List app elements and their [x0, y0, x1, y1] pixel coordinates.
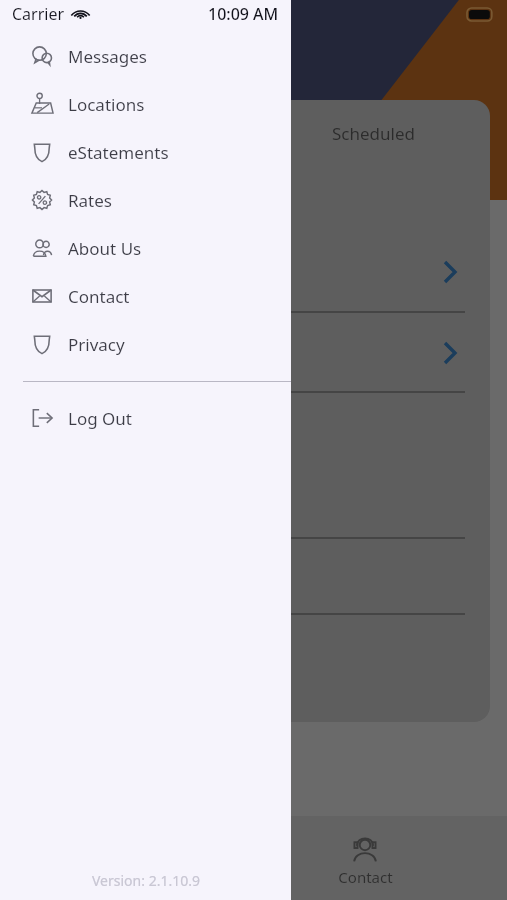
staticText: Contact	[338, 867, 393, 887]
button[interactable]: About Us	[0, 224, 291, 272]
staticText: Rates	[68, 189, 112, 212]
staticText: Contact	[68, 285, 130, 308]
staticText: eStatements	[68, 141, 169, 164]
button[interactable]: Contact	[0, 272, 291, 320]
button[interactable]: Messages	[0, 32, 291, 80]
staticText: Carrier	[12, 3, 65, 25]
staticText: Scheduled	[332, 122, 415, 145]
staticText: About Us	[68, 237, 142, 260]
staticText: Log Out	[68, 407, 132, 430]
button[interactable]: Privacy	[0, 320, 291, 368]
button[interactable]: Rates	[0, 176, 291, 224]
button[interactable]: Log Out	[0, 394, 291, 442]
button[interactable]: Locations	[0, 80, 291, 128]
staticText: Privacy	[68, 333, 125, 356]
button[interactable]: eStatements	[0, 128, 291, 176]
button[interactable]: Contact	[310, 816, 420, 900]
staticText: Version: 2.1.10.9	[92, 871, 200, 890]
staticText: Messages	[68, 45, 148, 68]
staticText: 10:09 AM	[208, 3, 279, 25]
button[interactable]: Bill Pay	[200, 816, 310, 900]
staticText: Locations	[68, 93, 145, 116]
